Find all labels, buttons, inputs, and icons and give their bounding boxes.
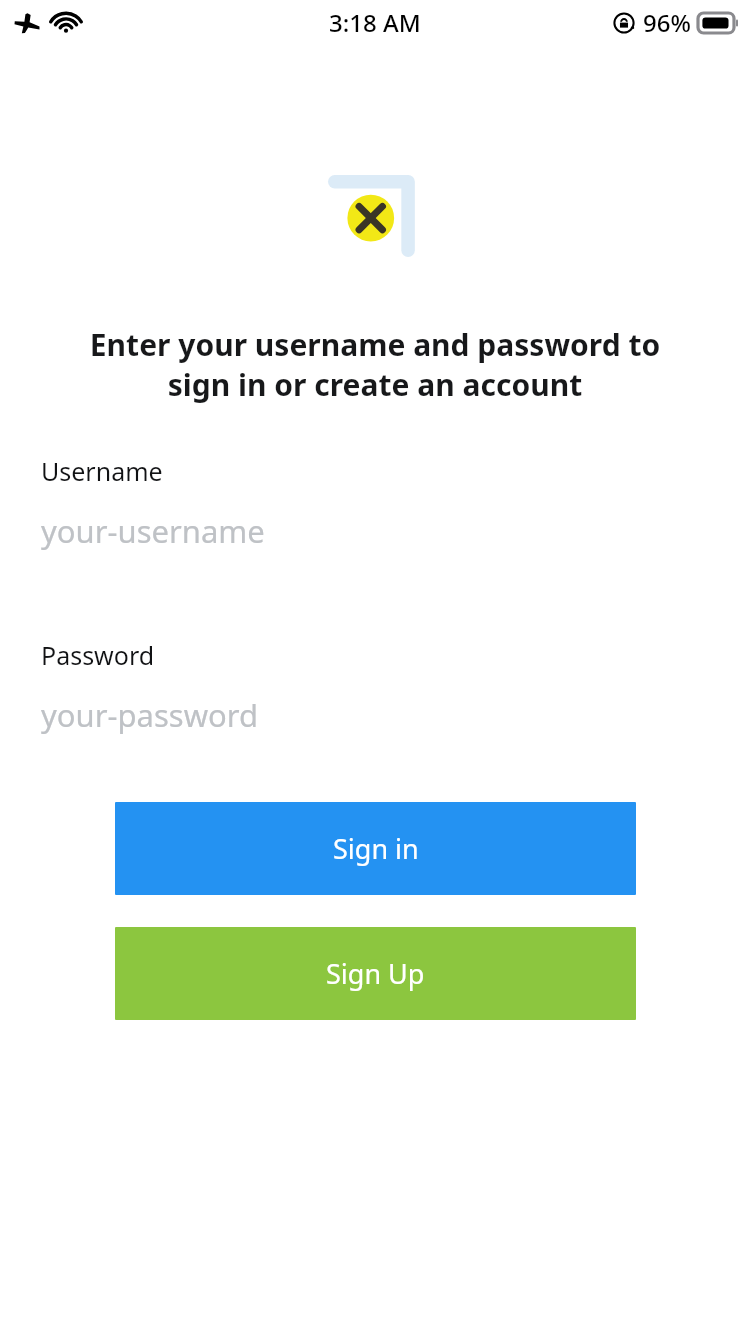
- staticText: Password: [41, 638, 155, 672]
- staticText: 3:18 AM: [329, 6, 421, 39]
- button[interactable]: Username: [0, 454, 750, 552]
- staticText: 96%: [643, 6, 691, 39]
- staticText: Enter your username and password to sign…: [24, 324, 726, 405]
- staticText: Sign Up: [326, 955, 425, 992]
- staticText: your-password: [41, 694, 259, 736]
- staticText: Sign in: [333, 830, 419, 867]
- staticText: Username: [41, 454, 163, 488]
- staticText: your-username: [41, 510, 265, 552]
- button[interactable]: Sign Up: [115, 927, 636, 1020]
- button[interactable]: Sign in: [115, 802, 636, 895]
- button[interactable]: Password: [0, 638, 750, 736]
